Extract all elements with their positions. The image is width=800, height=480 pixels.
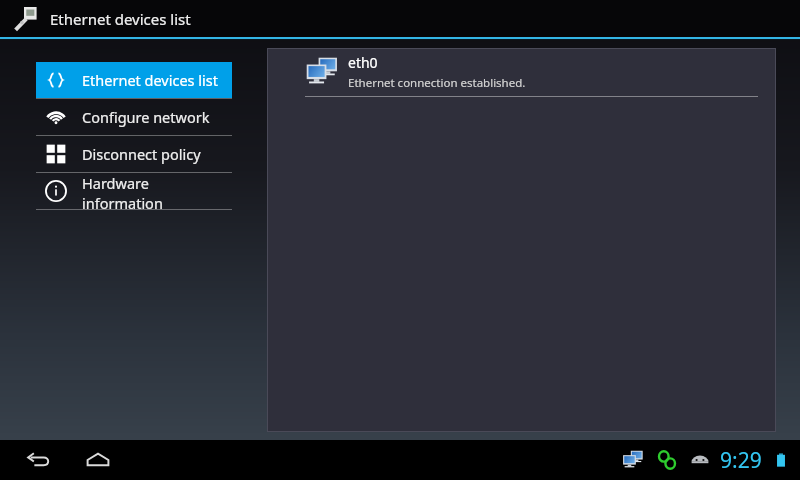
button[interactable]: Hardware information <box>36 173 232 209</box>
staticText: Ethernet connection established. <box>348 75 526 91</box>
staticText: Disconnect policy <box>82 144 201 164</box>
button[interactable]: Home <box>76 440 120 480</box>
staticText: Configure network <box>82 107 210 127</box>
button[interactable]: eth0 <box>267 48 776 96</box>
button[interactable]: Ethernet devices list <box>36 62 232 98</box>
staticText: 9:29 <box>720 446 762 475</box>
button[interactable]: Disconnect policy <box>36 136 232 172</box>
staticText: eth0 <box>348 53 378 72</box>
staticText: Ethernet devices list <box>50 9 191 29</box>
button[interactable]: Back <box>16 440 60 480</box>
staticText: Ethernet devices list <box>82 70 218 90</box>
button[interactable]: Configure network <box>36 99 232 135</box>
staticText: Hardware information <box>82 173 232 209</box>
